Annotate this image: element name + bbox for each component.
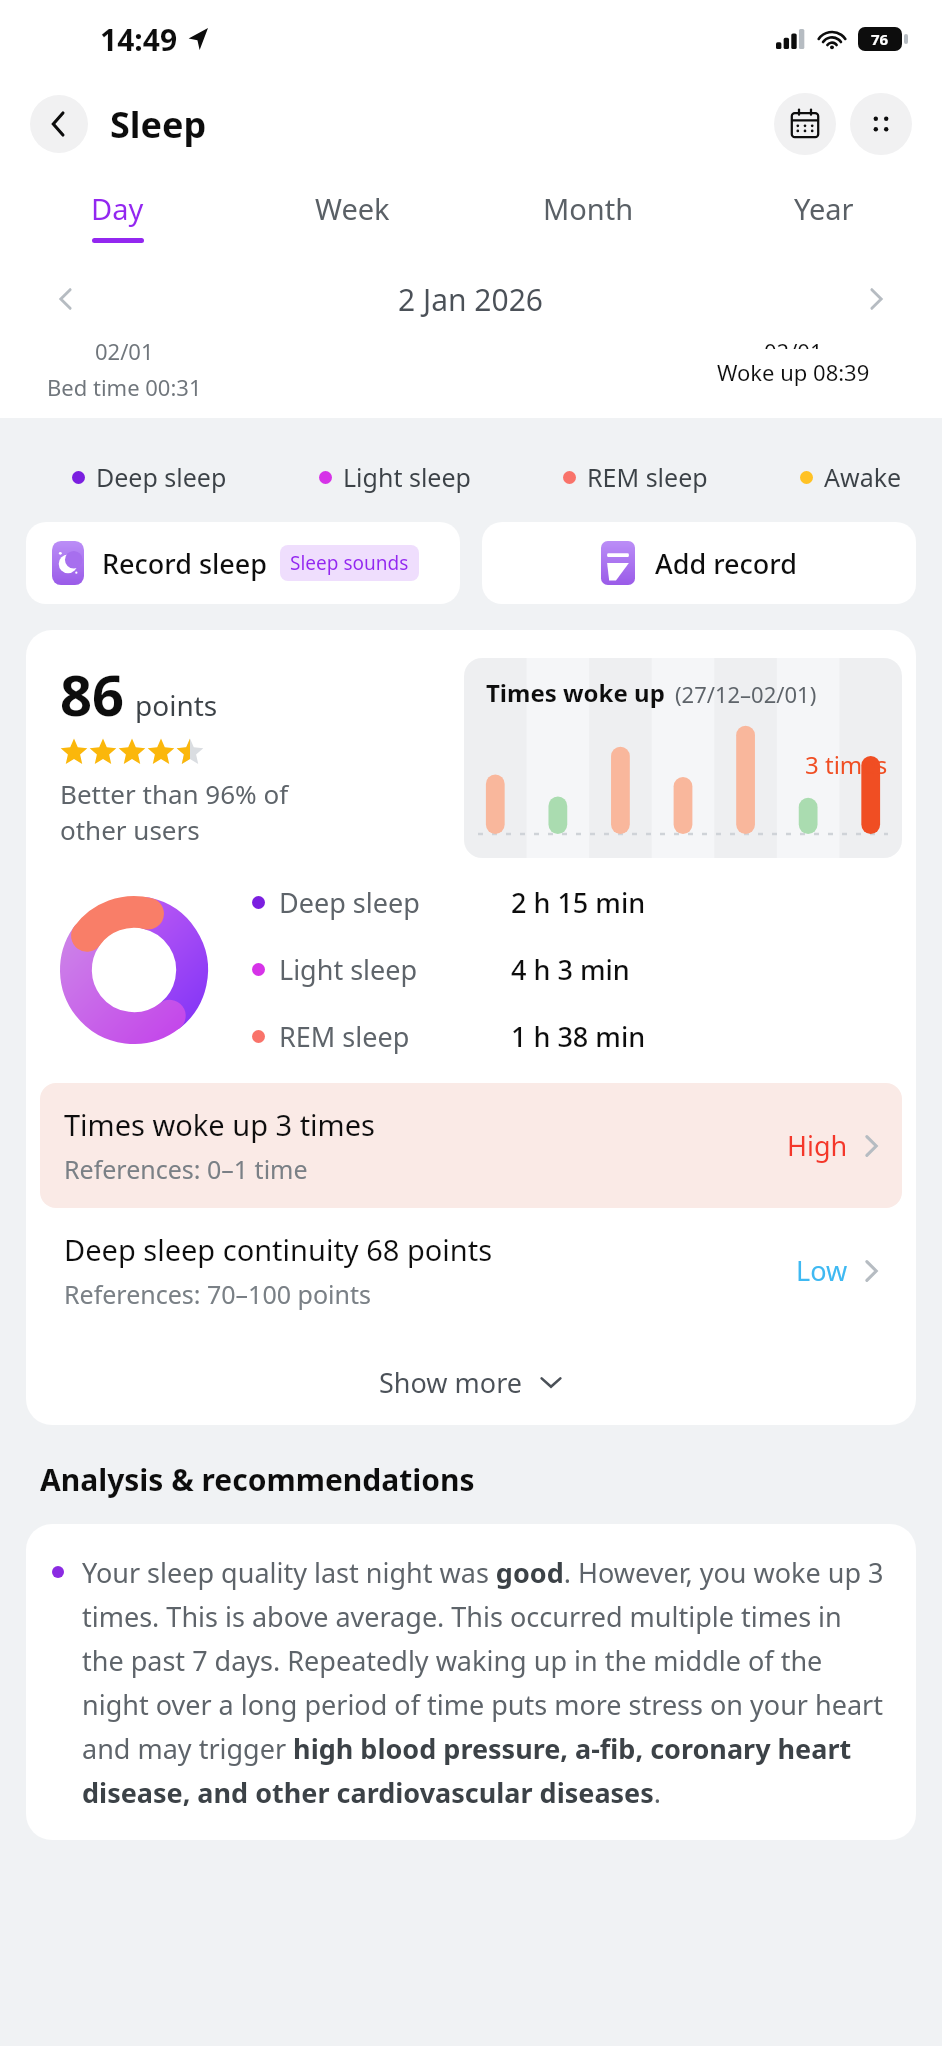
button[interactable]: Record sleep (26, 522, 460, 604)
staticText: REM sleep (587, 460, 708, 494)
staticText: Better than 96% of other users (60, 776, 289, 848)
staticText: High (787, 1127, 848, 1164)
staticText: Times woke up (486, 676, 665, 709)
staticText: Analysis & recommendations (40, 1459, 475, 1500)
staticText: Deep sleep (96, 460, 227, 494)
button[interactable]: More options (850, 93, 912, 155)
button[interactable]: Week (235, 170, 470, 262)
staticText: References: 0–1 time (64, 1152, 308, 1186)
staticText: 2 h 15 min (511, 884, 646, 921)
staticText: 4 h 3 min (511, 951, 630, 988)
staticText: Light sleep (279, 951, 511, 988)
staticText: Low (796, 1252, 848, 1289)
staticText: Show more (379, 1364, 522, 1401)
staticText: Week (315, 189, 390, 228)
staticText: Light sleep (343, 460, 471, 494)
staticText: 1 h 38 min (511, 1018, 646, 1055)
button[interactable]: Next day (856, 279, 896, 319)
staticText: points (135, 686, 218, 724)
staticText: 76 (871, 29, 889, 49)
staticText: 86 (60, 656, 125, 732)
staticText: REM sleep (279, 1018, 511, 1055)
button[interactable]: Day (0, 170, 235, 262)
staticText: Sleep (110, 100, 207, 149)
staticText: 02/01 (764, 336, 823, 349)
staticText: Record sleep (102, 545, 268, 582)
staticText: 3 times (805, 748, 888, 781)
staticText: Times woke up 3 times (64, 1105, 375, 1144)
button[interactable]: Calendar (774, 93, 836, 155)
staticText: Awake (824, 460, 902, 494)
button[interactable]: Show more (26, 1339, 916, 1425)
staticText: Deep sleep (279, 884, 511, 921)
staticText: Add record (655, 545, 797, 582)
button[interactable]: Year (706, 170, 942, 262)
staticText: 2 Jan 2026 (398, 279, 543, 320)
button[interactable]: Times woke up 3 times (40, 1083, 902, 1208)
staticText: 02/01 (95, 336, 154, 366)
staticText: Deep sleep continuity 68 points (64, 1230, 493, 1269)
staticText: Year (794, 189, 854, 228)
staticText: Month (543, 189, 634, 228)
button[interactable]: Deep sleep continuity 68 points (40, 1208, 902, 1333)
staticText: References: 70–100 points (64, 1277, 371, 1311)
staticText: Your sleep quality last night was good. … (82, 1554, 890, 1810)
staticText: Sleep sounds (290, 550, 409, 576)
staticText: Day (91, 189, 144, 228)
button[interactable]: Previous day (46, 279, 86, 319)
staticText: Woke up 08:39 (717, 357, 870, 387)
staticText: Bed time 00:31 (47, 372, 202, 402)
button[interactable]: Add record (482, 522, 916, 604)
staticText: 14:49 (100, 19, 178, 60)
button[interactable]: Back (30, 95, 88, 153)
button[interactable]: Month (470, 170, 706, 262)
button[interactable]: Times woke up (464, 658, 902, 858)
staticText: (27/12–02/01) (675, 679, 817, 709)
